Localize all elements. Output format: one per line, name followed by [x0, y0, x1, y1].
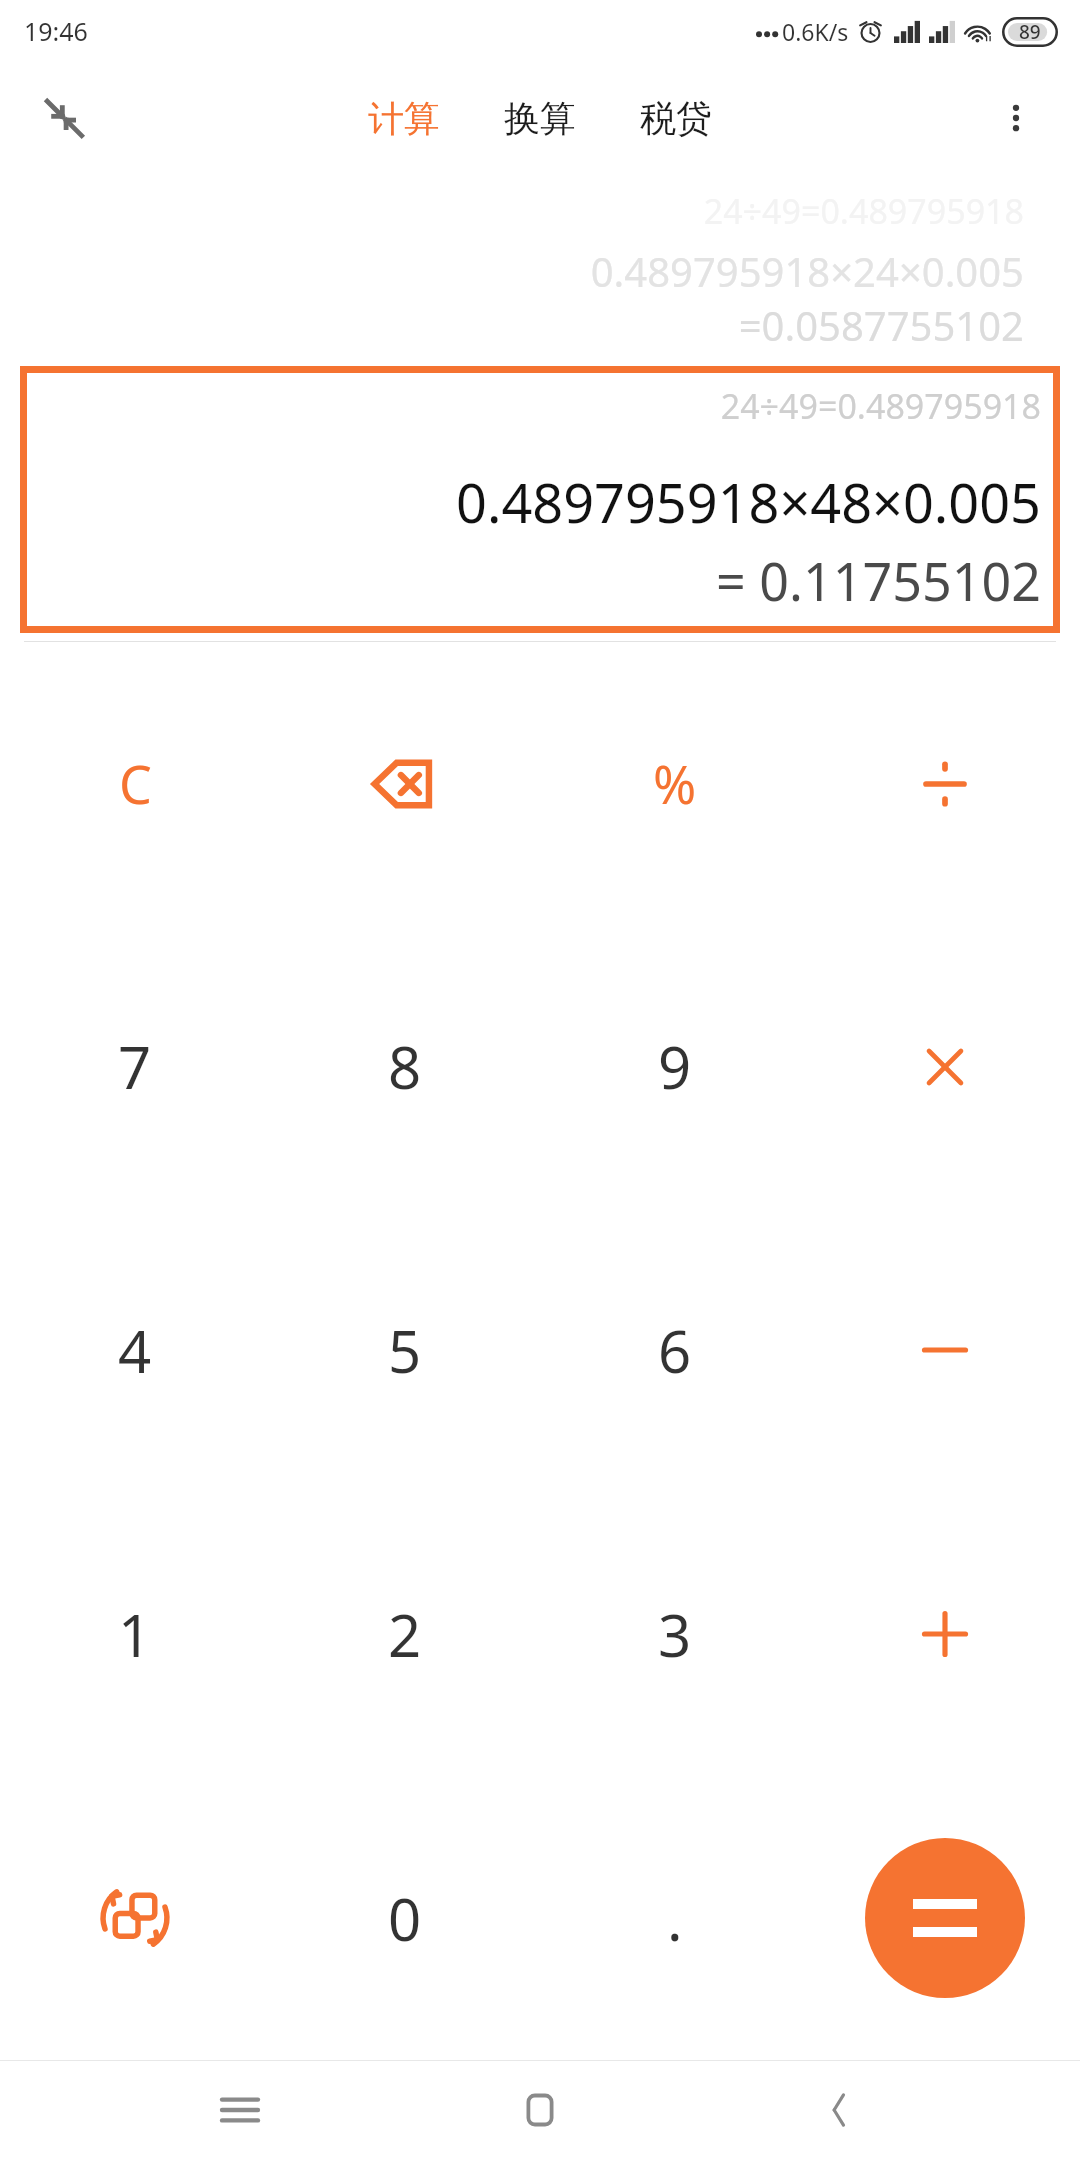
staticText: = 0.11755102: [39, 545, 1041, 616]
button[interactable]: Home: [480, 2060, 600, 2160]
button[interactable]: 6: [540, 1208, 810, 1492]
staticText: 5: [388, 1311, 422, 1390]
button[interactable]: 24÷49=0.489795918: [20, 366, 1060, 633]
button[interactable]: Backspace: [270, 642, 540, 925]
button[interactable]: Convert: [0, 1776, 270, 2060]
button[interactable]: 9: [540, 925, 810, 1208]
staticText: %: [653, 748, 697, 819]
button[interactable]: 换算: [494, 88, 586, 149]
button[interactable]: .: [540, 1776, 810, 2060]
staticText: .: [667, 1879, 683, 1958]
staticText: 6: [658, 1311, 692, 1390]
staticText: 0.489795918×24×0.005: [0, 244, 1024, 298]
button[interactable]: C: [0, 642, 270, 925]
staticText: 89: [1019, 19, 1041, 45]
staticText: 4: [118, 1311, 152, 1390]
button[interactable]: 8: [270, 925, 540, 1208]
button[interactable]: 税贷: [630, 88, 722, 149]
staticText: 换算: [504, 96, 576, 141]
staticText: C: [119, 748, 152, 819]
button[interactable]: 1: [0, 1492, 270, 1776]
button[interactable]: Divide: [810, 642, 1080, 925]
button[interactable]: Equals: [865, 1838, 1025, 1998]
button[interactable]: Back: [780, 2060, 900, 2160]
button[interactable]: %: [540, 642, 810, 925]
button[interactable]: Collapse: [22, 76, 106, 160]
staticText: 24÷49=0.489795918: [39, 383, 1041, 429]
button[interactable]: Multiply: [810, 925, 1080, 1208]
button[interactable]: Plus: [810, 1492, 1080, 1776]
button[interactable]: 7: [0, 925, 270, 1208]
staticText: 1: [118, 1595, 152, 1674]
button[interactable]: 2: [270, 1492, 540, 1776]
staticText: 0: [388, 1879, 422, 1958]
button[interactable]: 4: [0, 1208, 270, 1492]
button[interactable]: 计算: [358, 88, 450, 149]
button[interactable]: More options: [974, 76, 1058, 160]
staticText: 3: [658, 1595, 692, 1674]
staticText: 0.489795918×48×0.005: [39, 465, 1041, 539]
staticText: 19:46: [24, 14, 88, 48]
staticText: 7: [118, 1027, 152, 1106]
staticText: 计算: [368, 96, 440, 141]
staticText: =0.0587755102: [0, 298, 1024, 352]
button[interactable]: Minus: [810, 1208, 1080, 1492]
staticText: 9: [658, 1027, 692, 1106]
staticText: 8: [388, 1027, 422, 1106]
button[interactable]: 3: [540, 1492, 810, 1776]
button[interactable]: 5: [270, 1208, 540, 1492]
button[interactable]: Recents: [180, 2060, 300, 2160]
button[interactable]: 0: [270, 1776, 540, 2060]
staticText: 税贷: [640, 96, 712, 141]
staticText: 2: [388, 1595, 422, 1674]
staticText: 0.6K/s: [782, 16, 849, 47]
